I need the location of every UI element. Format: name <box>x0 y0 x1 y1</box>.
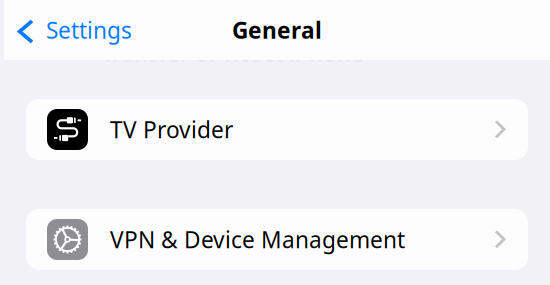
staticText: Settings <box>46 15 132 45</box>
staticText: TV Provider <box>110 114 233 144</box>
button[interactable]: Settings <box>4 2 142 58</box>
staticText: General <box>232 15 322 45</box>
button[interactable]: VPN & Device Management <box>26 209 528 270</box>
staticText: VPN & Device Management <box>110 224 405 254</box>
staticText: Transfer or Reset iPhone <box>101 38 364 68</box>
button[interactable]: TV Provider <box>26 99 528 160</box>
